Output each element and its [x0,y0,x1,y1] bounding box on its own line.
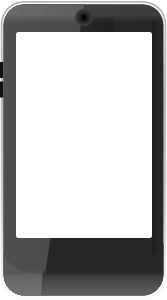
button[interactable]: Smartphone illustration [0,0,167,300]
